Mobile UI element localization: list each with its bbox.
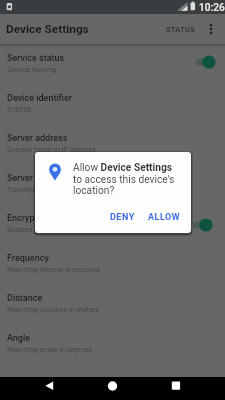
staticText: Angle <box>7 333 31 344</box>
button[interactable]: STATUS <box>162 21 203 38</box>
staticText: Reporting angle in degrees <box>7 345 93 353</box>
staticText: DENY <box>110 212 135 223</box>
button[interactable] <box>161 377 191 400</box>
staticText: Server address <box>7 133 68 144</box>
button[interactable]: Frequency <box>0 252 225 292</box>
button[interactable] <box>203 15 225 43</box>
staticText: STATUS <box>166 25 195 34</box>
staticText: Service status <box>7 53 65 64</box>
button[interactable]: Distance <box>0 292 225 332</box>
staticText: Enabled encryption <box>7 225 69 233</box>
staticText: Server port <box>7 173 52 184</box>
staticText: Reporting distance in meters <box>7 305 99 313</box>
button[interactable]: ALLOW <box>144 208 185 227</box>
button[interactable]: Angle <box>0 332 225 372</box>
staticText: Allow Device Settings to access this dev… <box>73 162 175 196</box>
staticText: 618738 <box>7 105 32 113</box>
staticText: Reporting interval in seconds <box>7 265 100 273</box>
button[interactable]: Server address <box>0 132 225 172</box>
button[interactable]: Server port <box>0 172 225 212</box>
button[interactable] <box>98 377 128 400</box>
staticText: Distance <box>7 293 43 304</box>
button[interactable]: Encryption <box>0 212 225 252</box>
staticText: Domain name or IP address <box>7 145 96 153</box>
button[interactable]: Service status <box>0 52 225 92</box>
button[interactable]: Device identifier <box>0 92 225 132</box>
button[interactable]: DENY <box>106 208 139 227</box>
staticText: Tracking server port <box>7 185 71 193</box>
staticText: ALLOW <box>148 212 181 223</box>
button[interactable] <box>194 52 222 72</box>
staticText: Frequency <box>7 253 49 264</box>
staticText: 10:26 <box>199 2 225 14</box>
staticText: Service running <box>7 65 57 73</box>
staticText: Encryption <box>7 213 50 224</box>
button[interactable] <box>34 377 64 400</box>
staticText: Device Settings <box>6 22 89 36</box>
button[interactable] <box>191 215 219 235</box>
staticText: Device identifier <box>7 93 72 104</box>
